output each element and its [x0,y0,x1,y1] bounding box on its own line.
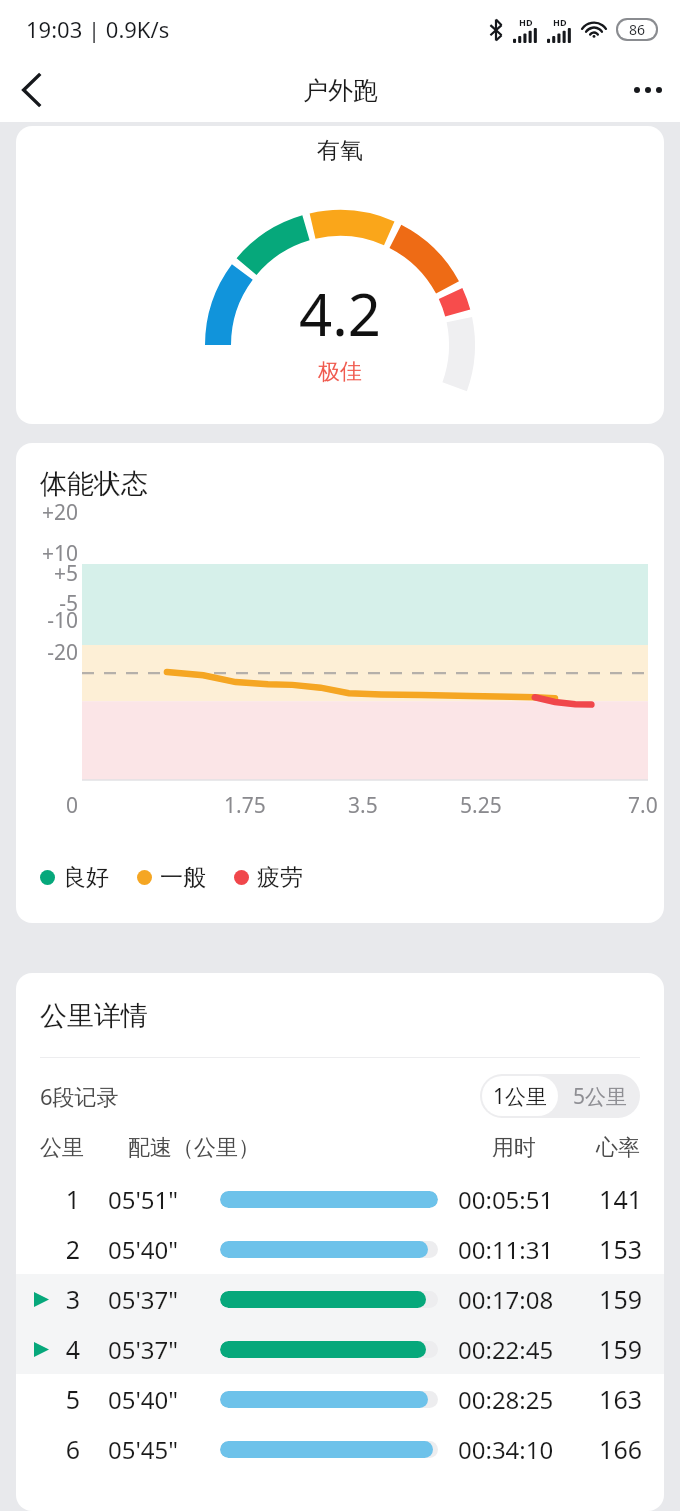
staticText: 公里详情 [40,999,148,1033]
staticText: 5.25 [460,791,502,820]
staticText: 19:03 | 0.9K/s [26,14,170,44]
staticText: 05'45" [108,1433,198,1466]
staticText: 00:05:51 [458,1183,586,1216]
staticText: 户外跑 [303,75,378,106]
staticText: 疲劳 [257,863,303,892]
staticText: 2 [60,1232,86,1266]
staticText: 166 [586,1432,642,1466]
staticText: 1 [60,1182,86,1216]
button[interactable]: 5公里 [560,1074,640,1118]
staticText: 公里 [40,1134,100,1162]
staticText: 1.75 [224,791,266,820]
staticText: 141 [586,1182,642,1216]
staticText: 86 [629,20,646,39]
staticText: 极佳 [318,358,362,386]
staticText: HD [519,16,533,28]
staticText: 05'40" [108,1233,198,1266]
staticText: 5 [60,1382,86,1416]
staticText: 0 [66,791,79,820]
staticText: 有氧 [317,136,363,165]
button[interactable]: 有氧 [16,126,664,424]
staticText: 4 [60,1332,86,1366]
button[interactable]: 2 [16,1224,664,1274]
staticText: 良好 [63,863,109,892]
staticText: +5 [30,559,78,588]
staticText: -10 [30,606,78,635]
staticText: 5公里 [573,1082,628,1111]
staticText: +20 [30,498,78,527]
button[interactable]: 1 [16,1174,664,1224]
staticText: 163 [586,1382,642,1416]
staticText: 3.5 [348,791,378,820]
staticText: -5 [30,589,78,618]
staticText: 05'51" [108,1183,198,1216]
staticText: 1公里 [493,1082,548,1111]
staticText: 一般 [160,863,206,892]
staticText: 00:28:25 [458,1383,586,1416]
staticText: -20 [30,638,78,667]
staticText: 7.0 [628,791,658,820]
staticText: +10 [30,539,78,568]
staticText: HD [553,16,567,28]
staticText: 05'37" [108,1283,198,1316]
staticText: 心率 [584,1134,640,1162]
staticText: 配速（公里） [128,1134,260,1162]
staticText: 05'37" [108,1333,198,1366]
staticText: 00:11:31 [458,1233,586,1266]
staticText: 6段记录 [40,1081,119,1111]
staticText: 6 [60,1432,86,1466]
button[interactable]: Back [0,58,64,122]
button[interactable]: 5 [16,1374,664,1424]
button[interactable]: 4 [16,1324,664,1374]
staticText: 3 [60,1282,86,1316]
button[interactable]: 1公里 [482,1076,558,1116]
staticText: 00:34:10 [458,1433,586,1466]
staticText: 159 [586,1332,642,1366]
staticText: 05'40" [108,1383,198,1416]
button[interactable]: 6 [16,1424,664,1474]
staticText: 用时 [466,1134,562,1162]
button[interactable]: 3 [16,1274,664,1324]
button[interactable]: 体能状态 [16,443,664,923]
staticText: 153 [586,1232,642,1266]
staticText: 00:17:08 [458,1283,586,1316]
staticText: 体能状态 [40,467,148,501]
staticText: 00:22:45 [458,1333,586,1366]
staticText: 4.2 [299,274,381,353]
staticText: 159 [586,1282,642,1316]
button[interactable]: More options [616,58,680,122]
